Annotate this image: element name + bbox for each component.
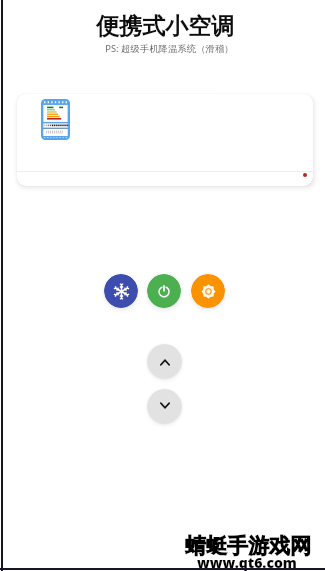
button[interactable]: Power [147,274,181,308]
staticText: www.qt6.com [198,552,298,571]
staticText: 蜻蜓手游戏网 [186,532,312,558]
button[interactable]: Cool mode [104,274,138,308]
button[interactable]: Decrease [147,389,182,424]
staticText: www.qt6.com [196,553,296,571]
button[interactable]: Brightness [191,274,225,308]
staticText: www.qt6.com [198,554,298,571]
staticText: 蜻蜓手游戏网 [186,533,312,559]
button[interactable] [17,94,313,186]
staticText: www.qt6.com [197,553,297,571]
staticText: 蜻蜓手游戏网 [185,533,311,559]
staticText: PS: 超级手机降温系统（滑稽） [105,42,234,55]
staticText: www.qt6.com [198,553,298,571]
staticText: 便携式小空调 [96,12,234,41]
staticText: 蜻蜓手游戏网 [184,534,310,560]
staticText: 蜻蜓手游戏网 [186,534,312,560]
staticText: www.qt6.com [197,552,297,571]
staticText: 蜻蜓手游戏网 [184,532,310,558]
staticText: 蜻蜓手游戏网 [185,532,311,558]
button[interactable]: Increase [147,344,182,379]
staticText: www.qt6.com [196,552,296,571]
staticText: 蜻蜓手游戏网 [185,534,311,560]
staticText: www.qt6.com [197,554,297,571]
staticText: 蜻蜓手游戏网 [184,533,310,559]
staticText: www.qt6.com [196,554,296,571]
